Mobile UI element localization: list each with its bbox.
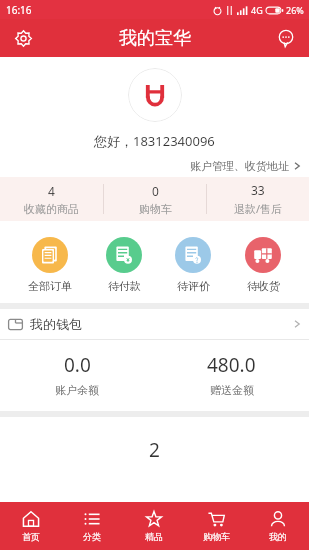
staticText: 全部订单 — [28, 279, 72, 293]
button[interactable]: 购物车 — [185, 502, 247, 550]
staticText: 收藏的商品 — [24, 202, 79, 216]
staticText: 26% — [286, 4, 304, 16]
staticText: 4G — [251, 4, 263, 16]
staticText: 账户余额 — [55, 383, 99, 397]
staticText: 我的 — [269, 531, 287, 542]
button[interactable]: 分类 — [61, 502, 123, 550]
button[interactable]: 待付款 — [100, 237, 148, 293]
staticText: 待评价 — [177, 279, 210, 293]
staticText: 0.0 — [64, 352, 91, 378]
staticText: 待收货 — [247, 279, 280, 293]
staticText: 2 — [149, 437, 160, 463]
staticText: 待付款 — [108, 279, 141, 293]
button[interactable]: 精品 — [123, 502, 185, 550]
staticText: 首页 — [22, 531, 40, 542]
button[interactable]: 全部订单 — [22, 237, 78, 293]
staticText: 退款/售后 — [234, 201, 283, 216]
staticText: 16:16 — [6, 3, 32, 17]
button[interactable]: Settings — [8, 23, 38, 53]
button[interactable]: 待评价 — [169, 237, 217, 293]
button[interactable]: 0.0 — [0, 352, 154, 397]
staticText: 我的钱包 — [30, 316, 82, 332]
staticText: 分类 — [83, 531, 101, 542]
staticText: 精品 — [145, 531, 163, 542]
button[interactable]: 账户管理、收货地址 — [0, 159, 309, 177]
staticText: 480.0 — [207, 352, 256, 378]
staticText: 33 — [251, 182, 265, 198]
button[interactable]: 0 — [104, 177, 206, 221]
button[interactable]: 待收货 — [239, 237, 287, 293]
button[interactable]: Avatar — [128, 68, 182, 122]
button[interactable]: Messages — [271, 23, 301, 53]
staticText: 赠送金额 — [210, 383, 254, 397]
button[interactable]: 我的钱包 — [0, 309, 309, 339]
staticText: 购物车 — [139, 202, 172, 216]
button[interactable]: 4 — [0, 177, 103, 221]
staticText: 4 — [48, 183, 55, 199]
button[interactable]: 首页 — [0, 502, 61, 550]
button[interactable]: 33 — [207, 177, 309, 221]
button[interactable]: 480.0 — [154, 352, 309, 397]
button[interactable]: 我的 — [247, 502, 309, 550]
staticText: 我的宝华 — [119, 27, 191, 50]
staticText: 您好，18312340096 — [94, 132, 215, 150]
staticText: 购物车 — [203, 531, 230, 542]
staticText: 0 — [152, 183, 159, 199]
staticText: 账户管理、收货地址 — [190, 159, 289, 173]
